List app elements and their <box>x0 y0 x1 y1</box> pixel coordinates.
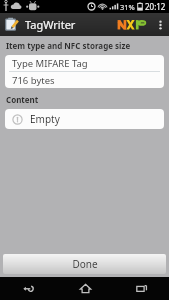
staticText: Done <box>72 257 98 271</box>
staticText: 716 bytes <box>12 74 55 87</box>
staticText: 20:12 <box>145 1 166 12</box>
button[interactable]: Recent apps <box>113 277 169 300</box>
button[interactable]: Back <box>0 277 57 300</box>
button[interactable]: 716 bytes <box>5 72 164 88</box>
staticText: 31% <box>120 2 135 12</box>
button[interactable]: More options <box>153 13 167 36</box>
staticText: Item type and NFC storage size <box>6 40 131 51</box>
staticText: Content <box>6 94 39 105</box>
button[interactable]: Done <box>3 254 166 274</box>
button[interactable]: Empty <box>5 109 164 129</box>
staticText: Empty <box>30 112 60 126</box>
button[interactable]: Home <box>57 277 113 300</box>
button[interactable]: NXP <box>117 18 147 31</box>
staticText: TagWriter <box>25 17 76 32</box>
button[interactable]: Type MIFARE Tag <box>5 55 164 71</box>
staticText: Type MIFARE Tag <box>12 57 88 70</box>
